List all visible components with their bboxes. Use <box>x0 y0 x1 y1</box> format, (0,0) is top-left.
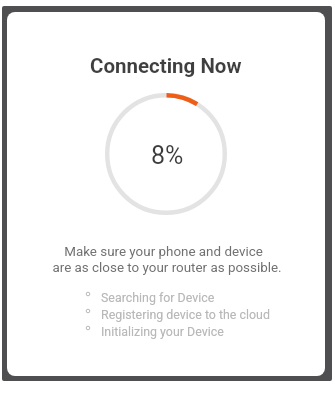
staticText: 8% <box>151 141 184 170</box>
staticText: are as close to your router as possible. <box>52 260 282 276</box>
staticText: Registering device to the cloud <box>101 307 270 322</box>
staticText: Connecting Now <box>90 54 242 78</box>
staticText: Make sure your phone and device <box>64 244 263 260</box>
staticText: Initializing your Device <box>101 324 224 339</box>
staticText: Searching for Device <box>101 290 215 305</box>
